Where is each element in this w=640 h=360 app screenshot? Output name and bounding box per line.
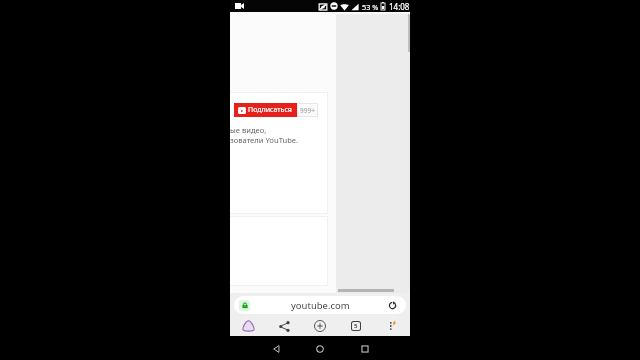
button[interactable]: Recents [356, 340, 374, 358]
button[interactable]: Подписаться [234, 103, 297, 117]
button[interactable]: Tabs [346, 316, 366, 336]
staticText: 53 % [362, 2, 379, 12]
button[interactable]: More options [382, 316, 402, 336]
button[interactable]: Home [238, 316, 258, 336]
staticText: 999+ [300, 106, 315, 115]
staticText: 14:08 [389, 1, 410, 12]
button[interactable]: Back [267, 340, 285, 358]
staticText: Подписаться [248, 105, 292, 115]
staticText: youtube.com [291, 299, 350, 312]
button[interactable]: youtube.com [234, 296, 406, 314]
staticText: 5 [354, 322, 358, 330]
button[interactable]: 999+ [298, 104, 317, 116]
other: Reload [388, 301, 397, 310]
staticText: зователи YouTube. [230, 135, 299, 145]
staticText: ые видео, [230, 125, 267, 135]
button[interactable]: Home [311, 340, 329, 358]
button[interactable]: New tab [310, 316, 330, 336]
button[interactable]: Share [274, 316, 294, 336]
